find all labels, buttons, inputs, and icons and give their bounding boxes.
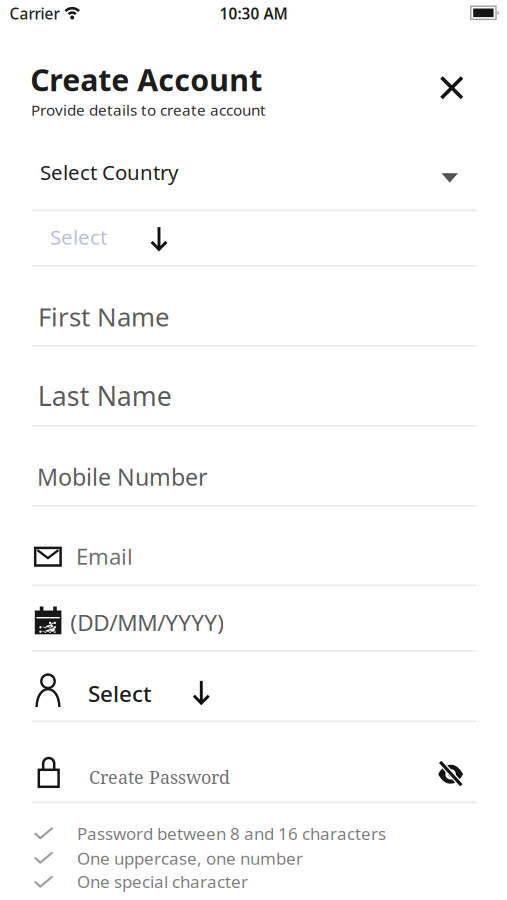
staticText: Last Name xyxy=(38,377,172,414)
button[interactable]: Last Name xyxy=(0,347,507,427)
staticText: (DD/MM/YYYY) xyxy=(70,607,224,638)
staticText: One uppercase, one number xyxy=(77,847,303,870)
button[interactable]: Close xyxy=(434,70,469,105)
staticText: One special character xyxy=(77,870,248,893)
button[interactable]: Select Country xyxy=(0,140,507,211)
staticText: Password between 8 and 16 characters xyxy=(77,822,386,845)
button[interactable]: Show password xyxy=(435,759,466,788)
staticText: First Name xyxy=(38,299,170,334)
staticText: Select xyxy=(50,223,107,251)
staticText: Select Country xyxy=(40,158,178,186)
staticText: Select xyxy=(88,678,152,708)
button[interactable]: First Name xyxy=(0,267,507,347)
button[interactable]: Email xyxy=(0,507,507,586)
button[interactable]: Select xyxy=(0,211,507,267)
staticText: Create Account xyxy=(30,59,262,100)
staticText: Create Password xyxy=(89,765,230,789)
button[interactable]: Mobile Number xyxy=(0,427,507,507)
button[interactable]: (DD/MM/YYYY) xyxy=(0,586,507,652)
staticText: 10:30 AM xyxy=(219,3,287,24)
staticText: Provide details to create account xyxy=(31,99,266,120)
staticText: Mobile Number xyxy=(37,461,208,493)
button[interactable]: Select xyxy=(0,652,507,722)
button[interactable]: Create Password xyxy=(0,722,507,803)
staticText: Email xyxy=(76,541,133,571)
staticText: Carrier xyxy=(9,3,59,24)
